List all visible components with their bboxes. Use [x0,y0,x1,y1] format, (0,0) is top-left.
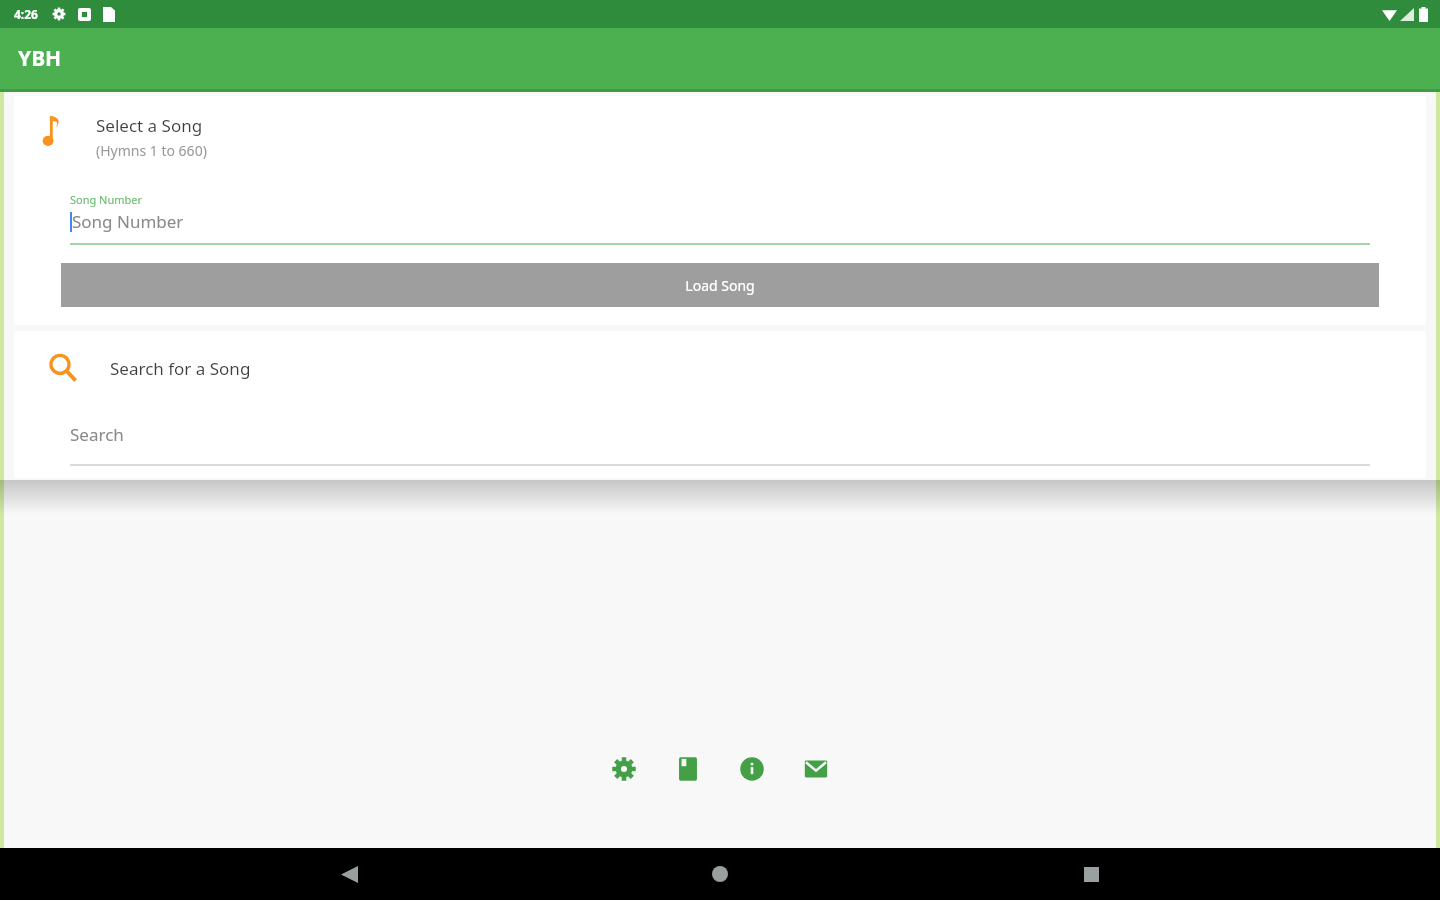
button[interactable]: Settings [607,752,641,786]
button[interactable]: About [735,752,769,786]
button[interactable]: Load Song [61,263,1379,307]
staticText: (Hymns 1 to 660) [96,141,207,160]
button[interactable]: Recent apps [1069,852,1113,896]
button[interactable]: Search for a Song [14,331,1426,478]
button[interactable]: Back [327,852,371,896]
staticText: 4:26 [14,6,38,22]
button[interactable]: Home [698,852,742,896]
staticText: Song Number [70,192,143,207]
staticText: YBH [18,44,62,73]
button[interactable]: Select a Song [14,96,1426,325]
staticText: Search [70,423,124,446]
staticText: Song Number [72,210,184,233]
button[interactable]: Email [799,752,833,786]
staticText: Load Song [685,276,755,295]
staticText: Search for a Song [110,357,251,380]
button[interactable]: Hymn book [671,752,705,786]
staticText: Select a Song [96,114,203,137]
